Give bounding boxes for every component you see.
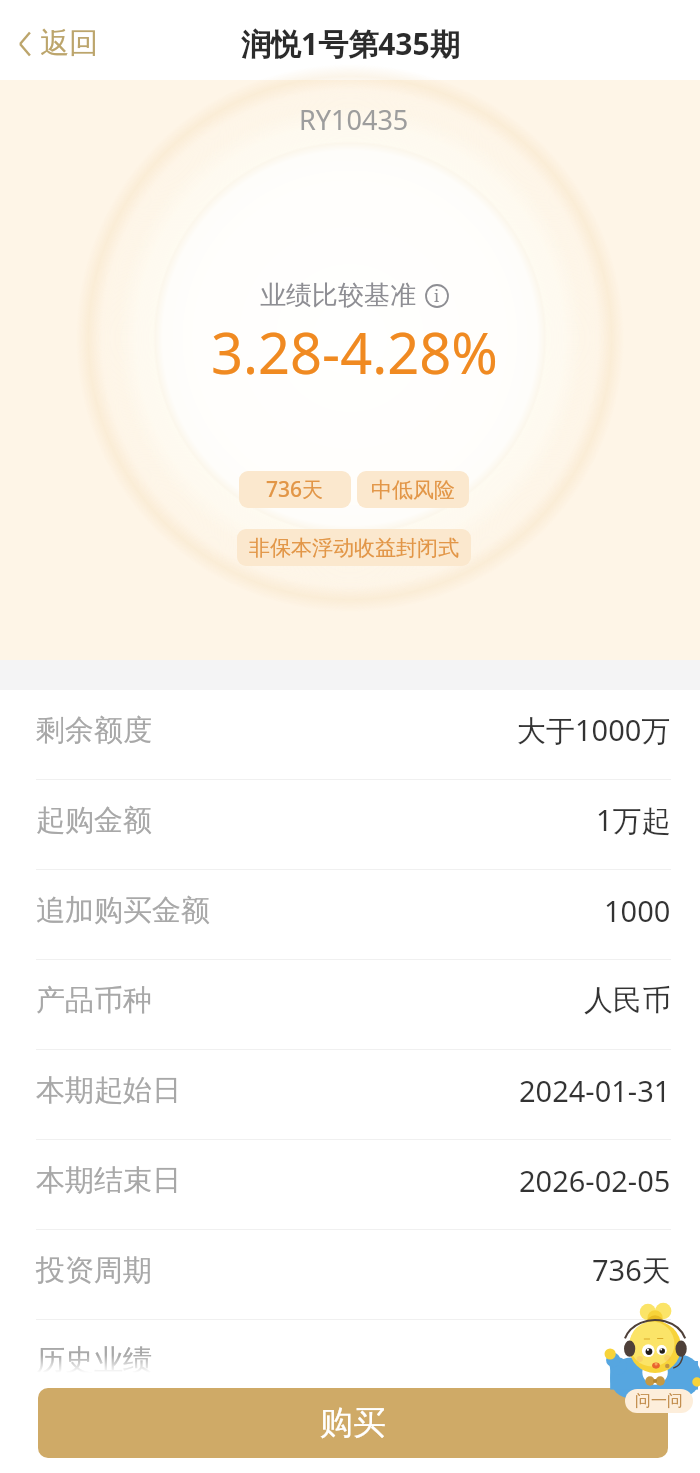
staticText: 追加购买金额 <box>36 892 210 929</box>
staticText: 736天 <box>266 475 324 504</box>
staticText: 购买 <box>320 1402 386 1444</box>
button[interactable]: 购买 <box>38 1388 668 1458</box>
staticText: 人民币 <box>584 982 671 1019</box>
button[interactable]: 投资周期 <box>0 1230 700 1320</box>
button[interactable]: 问一问 客服 <box>603 1300 700 1415</box>
staticText: 中低风险 <box>371 477 455 503</box>
button[interactable]: 追加购买金额 <box>0 870 700 960</box>
staticText: i <box>434 285 440 307</box>
staticText: 736天 <box>592 1250 671 1290</box>
staticText: 2026-02-05 <box>519 1161 671 1200</box>
staticText: RY10435 <box>299 101 409 138</box>
button[interactable]: 本期起始日 <box>0 1050 700 1140</box>
button[interactable]: 起购金额 <box>0 780 700 870</box>
button[interactable]: 本期结束日 <box>0 1140 700 1230</box>
button[interactable]: 返回 <box>10 15 106 72</box>
staticText: 剩余额度 <box>36 712 152 749</box>
staticText: 投资周期 <box>36 1252 152 1289</box>
staticText: 本期起始日 <box>36 1072 181 1109</box>
staticText: 大于1000万 <box>517 710 671 750</box>
staticText: 问一问 <box>635 1391 683 1411</box>
staticText: 非保本浮动收益封闭式 <box>249 535 459 561</box>
staticText: 3.28-4.28% <box>211 314 498 390</box>
button[interactable]: 剩余额度 <box>0 690 700 780</box>
button[interactable]: 历史业绩 <box>0 1320 700 1410</box>
staticText: 1000 <box>604 891 671 930</box>
button[interactable]: 产品币种 <box>0 960 700 1050</box>
staticText: 业绩比较基准 <box>260 279 416 312</box>
staticText: 1万起 <box>596 800 671 840</box>
staticText: 润悦1号第435期 <box>241 23 460 64</box>
staticText: 2024-01-31 <box>519 1071 671 1110</box>
staticText: 产品币种 <box>36 982 152 1019</box>
staticText: 历史业绩 <box>36 1342 152 1379</box>
staticText: 起购金额 <box>36 802 152 839</box>
staticText: 返回 <box>40 25 98 62</box>
staticText: 本期结束日 <box>36 1162 181 1199</box>
